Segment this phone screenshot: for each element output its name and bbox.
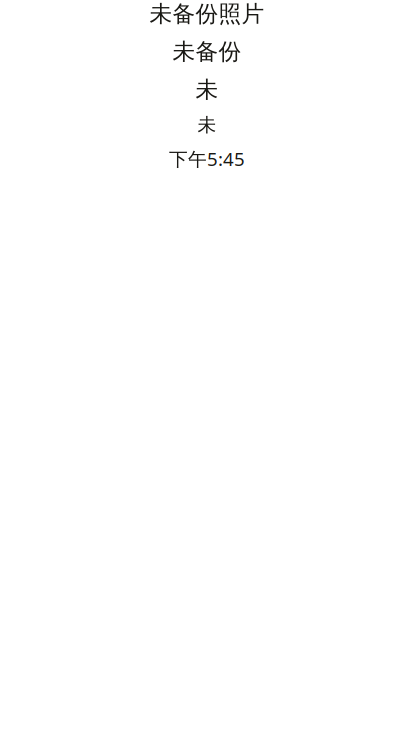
staticText: 未备份: [172, 38, 241, 66]
staticText: 未备份照片: [149, 0, 264, 28]
staticText: 未: [197, 113, 216, 136]
staticText: 未: [195, 76, 218, 103]
staticText: 下午5:45: [169, 146, 245, 171]
